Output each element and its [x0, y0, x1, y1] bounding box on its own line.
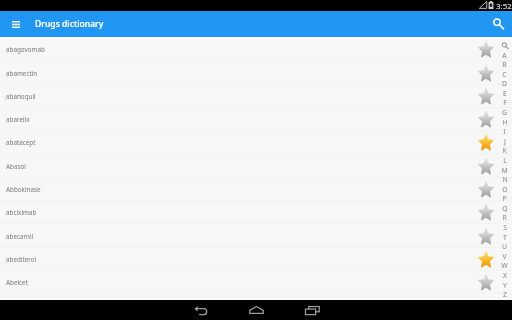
button[interactable]: V [497, 252, 512, 262]
button[interactable]: Home [228, 300, 284, 320]
button[interactable]: O [497, 185, 512, 195]
button[interactable]: Abasol [0, 155, 512, 178]
staticText: D [502, 79, 507, 88]
staticText: abciximab [6, 208, 37, 217]
button[interactable]: abecarnil [0, 225, 512, 248]
staticText: G [502, 108, 507, 117]
button[interactable]: Open navigation drawer [0, 11, 26, 37]
staticText: T [503, 233, 507, 242]
staticText: B [502, 60, 507, 69]
staticText: U [502, 242, 507, 251]
staticText: F [503, 98, 507, 107]
button[interactable]: abagovomab [0, 38, 512, 61]
button[interactable]: Back [173, 300, 228, 320]
button[interactable]: Favourite [475, 295, 497, 318]
staticText: J [504, 137, 506, 146]
staticText: K [502, 146, 507, 155]
button[interactable]: Favourite [475, 178, 497, 201]
button[interactable]: Abelcet [0, 271, 512, 294]
button[interactable]: Search [486, 11, 512, 37]
staticText: X [503, 271, 507, 280]
staticText: V [502, 252, 507, 261]
button[interactable]: Favourite [475, 155, 497, 178]
staticText: R [502, 213, 507, 222]
staticText: S [503, 223, 507, 232]
button[interactable]: Favourite [475, 248, 497, 271]
button[interactable]: abatacept [0, 131, 512, 154]
button[interactable]: L [497, 156, 512, 166]
button[interactable]: Favourite [475, 225, 497, 248]
staticText: abecarnil [6, 232, 34, 241]
staticText: Abasol [6, 162, 26, 171]
staticText: P [502, 194, 507, 203]
button[interactable]: Favourite [475, 38, 497, 61]
staticText: Abbokinase [6, 185, 41, 194]
staticText: Z [503, 290, 507, 299]
staticText: abediterol [6, 255, 37, 264]
staticText: abarelix [6, 115, 30, 124]
button[interactable]: U [497, 242, 512, 252]
staticText: A [502, 51, 507, 60]
button[interactable]: N [497, 175, 512, 185]
staticText: Abelcet [6, 278, 28, 287]
staticText: Q [502, 204, 508, 213]
button[interactable]: W [497, 261, 512, 271]
staticText: abatacept [6, 138, 36, 147]
button[interactable]: F [497, 98, 512, 108]
button[interactable]: Favourite [475, 85, 497, 108]
staticText: E [503, 89, 507, 98]
button[interactable]: abediterol [0, 248, 512, 271]
button[interactable]: abamectin [0, 62, 512, 85]
button[interactable]: Y [497, 281, 512, 291]
button[interactable]: Q [497, 204, 512, 214]
button[interactable]: A [497, 51, 512, 61]
button[interactable]: Favourite [475, 108, 497, 131]
staticText: W [501, 261, 508, 270]
button[interactable]: Z [497, 290, 512, 300]
button[interactable]: H [497, 118, 512, 128]
staticText: L [503, 156, 507, 165]
button[interactable]: J [497, 137, 512, 147]
button[interactable]: T [497, 233, 512, 243]
button[interactable]: C [497, 70, 512, 80]
staticText: O [502, 185, 508, 194]
button[interactable]: abarelix [0, 108, 512, 131]
button[interactable]: Favourite [475, 131, 497, 154]
staticText: C [502, 70, 507, 79]
staticText: Y [503, 281, 507, 290]
button[interactable]: K [497, 146, 512, 156]
button[interactable]: M [497, 166, 512, 176]
staticText: abagovomab [6, 45, 45, 54]
button[interactable]: E [497, 89, 512, 99]
button[interactable]: Search index [497, 41, 512, 51]
staticText: H [502, 118, 508, 127]
staticText: Drugs dictionary [35, 18, 104, 30]
button[interactable]: Favourite [475, 62, 497, 85]
staticText: I [503, 127, 506, 136]
staticText: N [502, 175, 508, 184]
button[interactable]: R [497, 213, 512, 223]
button[interactable]: Favourite [475, 271, 497, 294]
button[interactable]: S [497, 223, 512, 233]
button[interactable]: Recent apps [284, 300, 340, 320]
button[interactable]: Abbokinase [0, 178, 512, 201]
button[interactable]: Favourite [475, 201, 497, 224]
staticText: abanoquil [6, 92, 36, 101]
staticText: M [501, 166, 508, 175]
button[interactable]: I [497, 127, 512, 137]
staticText: 3:52 [496, 1, 512, 12]
button[interactable]: Abilify [0, 295, 512, 318]
button[interactable]: D [497, 79, 512, 89]
button[interactable]: abciximab [0, 201, 512, 224]
button[interactable]: G [497, 108, 512, 118]
button[interactable]: B [497, 60, 512, 70]
button[interactable]: X [497, 271, 512, 281]
staticText: abamectin [6, 69, 38, 78]
button[interactable]: P [497, 194, 512, 204]
button[interactable]: abanoquil [0, 85, 512, 108]
